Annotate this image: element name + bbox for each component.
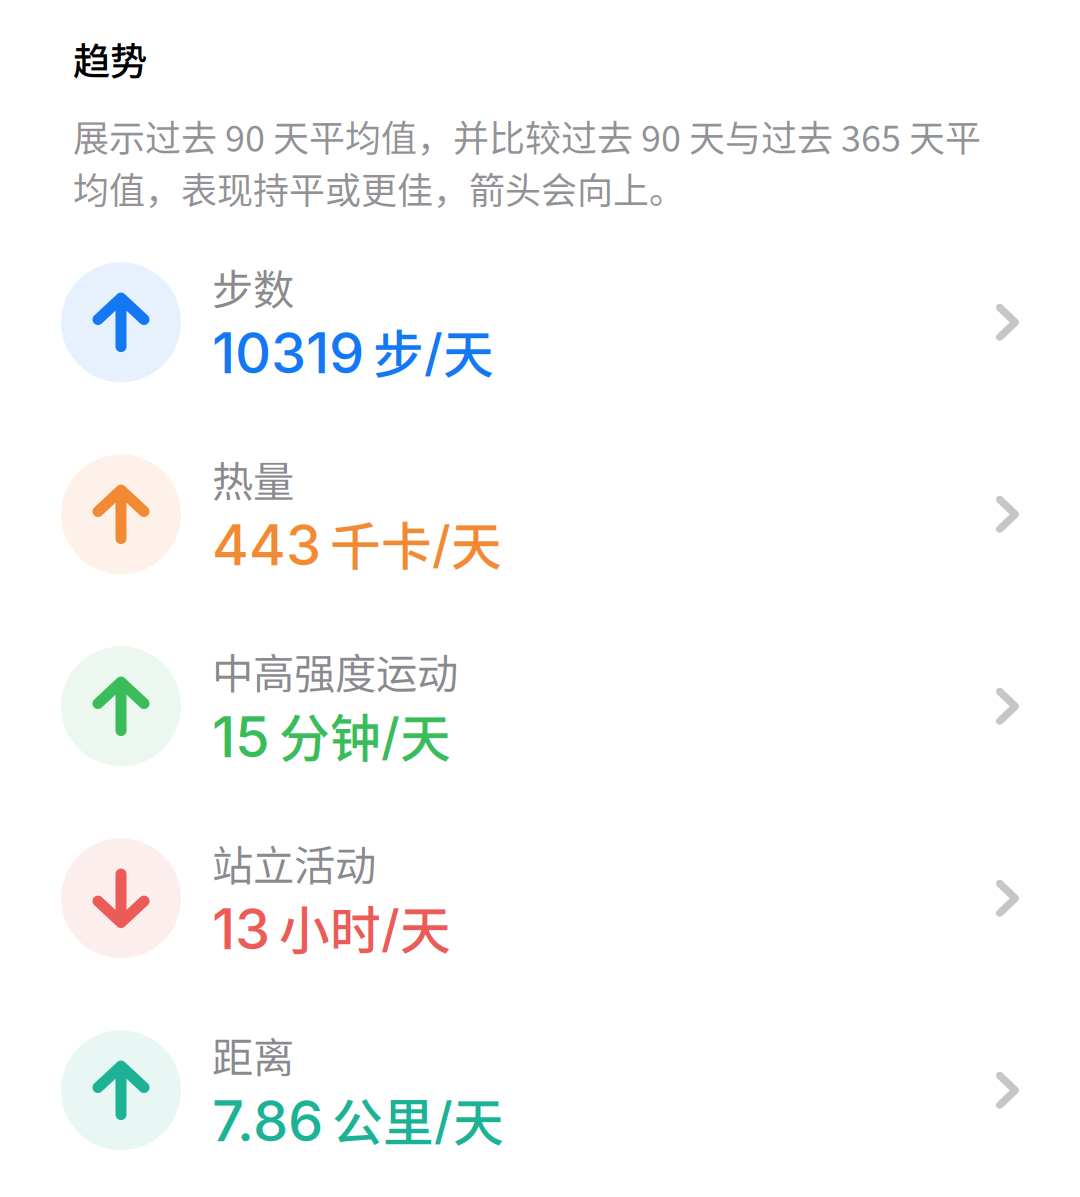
button[interactable]: 热量 (0, 418, 1080, 610)
staticText: 趋势 (73, 32, 147, 86)
staticText: 7.86 (212, 1087, 323, 1155)
staticText: 15 (212, 703, 270, 771)
button[interactable]: 步数 (0, 226, 1080, 418)
staticText: 分钟/天 (279, 699, 451, 772)
button[interactable]: 站立活动 (0, 802, 1080, 994)
button[interactable]: 中高强度运动 (0, 610, 1080, 802)
staticText: 千卡/天 (330, 507, 502, 580)
button[interactable]: 距离 (0, 994, 1080, 1186)
staticText: 站立活动 (212, 833, 376, 893)
staticText: 中高强度运动 (212, 641, 458, 701)
staticText: 小时/天 (279, 891, 451, 964)
staticText: 步/天 (373, 315, 494, 388)
staticText: 公里/天 (332, 1083, 504, 1156)
staticText: 443 (212, 511, 321, 579)
staticText: 10319 (212, 319, 364, 387)
staticText: 热量 (212, 449, 294, 509)
staticText: 展示过去 90 天平均值，并比较过去 90 天与过去 365 天平均值，表现持平… (73, 110, 981, 214)
staticText: 距离 (212, 1025, 294, 1085)
staticText: 步数 (212, 257, 294, 317)
staticText: 13 (212, 895, 270, 963)
